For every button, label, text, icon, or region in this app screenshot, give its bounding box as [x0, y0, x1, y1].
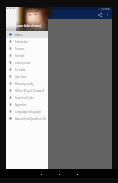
button[interactable]: Frames	[6, 45, 48, 52]
staticText: Friends	[15, 54, 25, 58]
button[interactable]: Agencies	[6, 101, 48, 108]
button[interactable]: Language this guide	[6, 108, 48, 115]
button[interactable]: Recent apps	[73, 170, 81, 178]
button[interactable]: More options	[104, 11, 111, 18]
button[interactable]: To trade	[6, 66, 48, 73]
staticText: Home	[15, 33, 23, 37]
button[interactable]: Latest posts	[6, 59, 48, 66]
staticText: Frames	[15, 47, 25, 51]
button[interactable]: Home	[55, 170, 63, 178]
staticText: Search all links	[15, 96, 34, 100]
staticText: Morning study	[15, 82, 34, 86]
staticText: Lorem ipsum dolor sit amet, consectetur	[7, 24, 48, 28]
button[interactable]: Friends	[6, 52, 48, 59]
button[interactable]: Morning study	[6, 80, 48, 87]
staticText: Language this guide	[15, 110, 41, 114]
button[interactable]: About third Sparks or 30 area card	[6, 115, 48, 122]
button[interactable]: Home	[6, 31, 48, 38]
staticText: About third Sparks or 30 area card	[15, 117, 48, 121]
button[interactable]: Jobs here	[6, 73, 48, 80]
button[interactable]: Share	[95, 10, 104, 19]
staticText: To trade	[15, 68, 26, 72]
button[interactable]: Office 30 and 30 award	[6, 87, 48, 94]
button[interactable]: Favourites	[6, 38, 48, 45]
staticText: Agencies	[15, 103, 27, 107]
staticText: Office 30 and 30 award	[15, 89, 45, 93]
staticText: Jobs here	[15, 75, 27, 79]
staticText: Favourites	[15, 40, 29, 44]
staticText: Latest posts	[15, 61, 31, 65]
button[interactable]: Lorem ipsum dolor sit amet, consectetur	[6, 7, 48, 31]
button[interactable]: Search all links	[6, 94, 48, 101]
button[interactable]: Back	[37, 170, 45, 178]
